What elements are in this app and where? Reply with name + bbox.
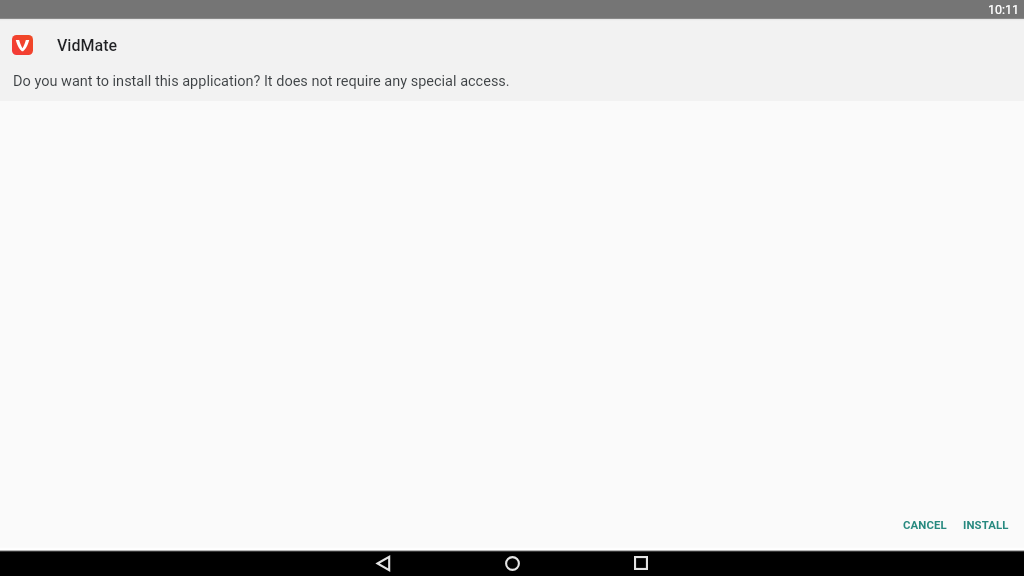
- button[interactable]: Back: [363, 550, 403, 576]
- button[interactable]: Home: [492, 550, 532, 576]
- staticText: 10:11: [988, 2, 1020, 17]
- button[interactable]: CANCEL: [895, 512, 955, 537]
- staticText: Do you want to install this application?…: [13, 73, 510, 90]
- staticText: VidMate: [57, 36, 118, 55]
- button[interactable]: Recent apps: [621, 550, 661, 576]
- staticText: CANCEL: [903, 518, 947, 531]
- button[interactable]: INSTALL: [955, 512, 1017, 537]
- staticText: INSTALL: [963, 518, 1009, 531]
